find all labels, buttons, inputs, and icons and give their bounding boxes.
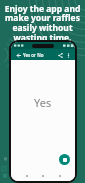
button[interactable]: More options	[64, 51, 72, 59]
staticText: Yes or No	[23, 52, 56, 58]
button[interactable]: Add	[59, 154, 70, 165]
button[interactable]: Back	[14, 51, 22, 59]
staticText: Enjoy the app and make your raffles easi…	[0, 3, 85, 44]
staticText: Yes	[34, 95, 52, 110]
button[interactable]: Share	[56, 51, 64, 59]
